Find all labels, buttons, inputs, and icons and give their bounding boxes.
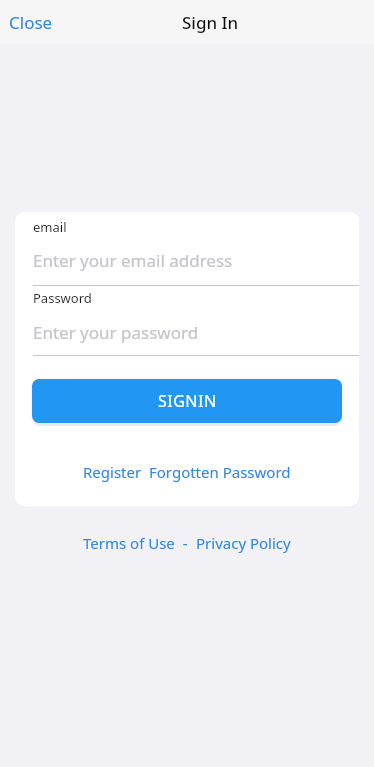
staticText: Close	[9, 11, 53, 34]
staticText: Register	[83, 462, 142, 482]
staticText: email	[33, 218, 67, 236]
staticText: Privacy Policy	[196, 533, 291, 553]
staticText: Enter your email address	[33, 249, 233, 272]
staticText: Password	[33, 289, 92, 307]
staticText: Terms of Use	[83, 533, 175, 553]
staticText: Sign In	[182, 11, 239, 34]
staticText: Enter your password	[33, 321, 199, 344]
button[interactable]: Enter your email address	[33, 249, 359, 277]
button[interactable]: Register	[83, 462, 142, 482]
button[interactable]: Terms of Use	[83, 533, 175, 553]
button[interactable]: Privacy Policy	[196, 533, 291, 553]
staticText: -	[175, 533, 196, 553]
staticText: Forgotten Password	[149, 462, 291, 482]
button[interactable]: Enter your password	[33, 321, 359, 349]
staticText: SIGNIN	[158, 390, 217, 412]
button[interactable]: Close	[0, 3, 61, 42]
button[interactable]: SIGNIN	[32, 379, 342, 423]
button[interactable]: Forgotten Password	[149, 462, 291, 482]
